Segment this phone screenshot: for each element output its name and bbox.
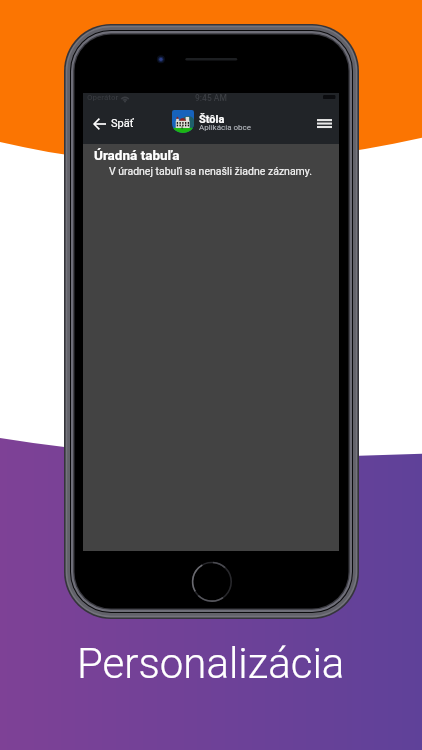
staticText: Aplikácia obce (199, 123, 251, 132)
staticText: Personalizácia (77, 639, 345, 688)
staticText: V úradnej tabuľi sa nenašli žiadne zázna… (109, 165, 313, 177)
button[interactable]: Menu (310, 103, 339, 144)
button[interactable]: Späť (89, 103, 138, 144)
staticText: Späť (111, 117, 134, 130)
staticText: Operátor (87, 93, 119, 102)
staticText: Štôla (199, 113, 225, 126)
staticText: 9:45 AM (195, 93, 227, 103)
staticText: Úradná tabuľa (94, 147, 180, 163)
